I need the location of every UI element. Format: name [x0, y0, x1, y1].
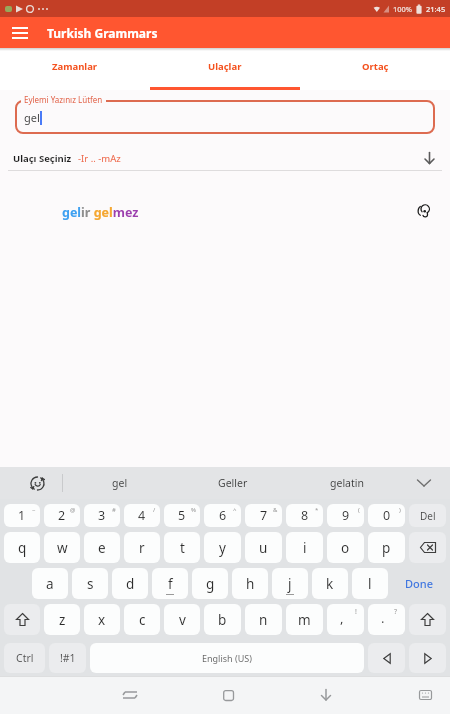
staticText: 1 — [18, 507, 26, 524]
button[interactable]: 5 — [164, 504, 200, 527]
staticText: ? — [394, 607, 398, 617]
staticText: , — [340, 609, 344, 627]
staticText: . — [381, 609, 385, 627]
button[interactable]: a — [32, 568, 68, 599]
staticText: f — [168, 575, 173, 593]
button[interactable]: n — [245, 604, 282, 635]
button[interactable]: m — [286, 604, 323, 635]
button[interactable]: . — [368, 604, 405, 635]
staticText: x — [98, 611, 106, 629]
staticText: gelir gelmez — [62, 204, 139, 221]
button[interactable]: English (US) — [90, 643, 364, 673]
button[interactable]: r — [124, 532, 160, 563]
button[interactable] — [20, 467, 54, 499]
staticText: English (US) — [202, 652, 252, 664]
button[interactable] — [4, 604, 40, 635]
staticText: r — [139, 539, 145, 557]
button[interactable]: 1 — [4, 504, 40, 527]
button[interactable]: u — [245, 532, 282, 563]
staticText: gel — [112, 476, 128, 490]
staticText: o — [341, 539, 350, 557]
button[interactable]: 7 — [245, 504, 282, 527]
button[interactable] — [407, 678, 443, 712]
button[interactable] — [308, 678, 344, 712]
button[interactable] — [409, 643, 446, 673]
button[interactable]: v — [164, 604, 200, 635]
button[interactable]: Done — [390, 568, 448, 599]
button[interactable] — [0, 17, 40, 48]
button[interactable]: b — [204, 604, 241, 635]
button[interactable]: s — [72, 568, 108, 599]
button[interactable]: 2 — [44, 504, 80, 527]
staticText: -Ir .. -mAz — [78, 152, 121, 165]
staticText: / — [153, 506, 156, 514]
button[interactable]: c — [124, 604, 160, 635]
button[interactable]: i — [286, 532, 323, 563]
button[interactable] — [112, 678, 148, 712]
button[interactable]: 0 — [368, 504, 405, 527]
staticText: # — [112, 506, 116, 514]
button[interactable]: gelatin — [312, 467, 382, 499]
button[interactable] — [210, 678, 246, 712]
staticText: n — [259, 611, 268, 629]
button[interactable]: w — [44, 532, 80, 563]
staticText: Ulaçı Seçiniz — [13, 152, 72, 165]
button[interactable]: Ulaçı Seçiniz — [13, 152, 442, 165]
staticText: m — [298, 611, 311, 629]
staticText: ^ — [233, 506, 237, 514]
button[interactable]: 3 — [84, 504, 120, 527]
button[interactable]: x — [84, 604, 120, 635]
staticText: Ulaçlar — [208, 60, 242, 73]
button[interactable] — [410, 469, 438, 497]
staticText: * — [315, 506, 319, 514]
button[interactable]: d — [112, 568, 148, 599]
button[interactable]: Geller — [198, 467, 268, 499]
button[interactable] — [368, 643, 405, 673]
button[interactable]: q — [4, 532, 40, 563]
staticText: ) — [399, 506, 401, 514]
button[interactable]: k — [312, 568, 348, 599]
button[interactable]: 6 — [204, 504, 241, 527]
button[interactable]: l — [352, 568, 388, 599]
button[interactable]: z — [44, 604, 80, 635]
staticText: q — [18, 539, 27, 557]
button[interactable]: j — [272, 568, 308, 599]
button[interactable]: gel — [15, 100, 435, 134]
staticText: Geller — [218, 476, 248, 490]
staticText: Ctrl — [16, 651, 34, 665]
button[interactable]: Ctrl — [4, 643, 45, 673]
staticText: 0 — [383, 507, 391, 524]
button[interactable]: f — [152, 568, 188, 599]
button[interactable]: 9 — [327, 504, 364, 527]
staticText: 100% — [393, 4, 413, 14]
button[interactable]: gel — [85, 467, 155, 499]
button[interactable]: t — [164, 532, 200, 563]
button[interactable]: 4 — [124, 504, 160, 527]
button[interactable]: !#1 — [49, 643, 86, 673]
staticText: k — [326, 575, 334, 593]
button[interactable]: Ulaçlar — [150, 48, 300, 90]
button[interactable]: g — [192, 568, 228, 599]
staticText: 5 — [178, 507, 186, 524]
staticText: c — [139, 611, 146, 629]
button[interactable]: Del — [409, 504, 446, 527]
staticText: !#1 — [60, 651, 76, 665]
button[interactable] — [409, 604, 446, 635]
button[interactable]: , — [327, 604, 364, 635]
staticText: 4 — [138, 507, 146, 524]
button[interactable]: 8 — [286, 504, 323, 527]
staticText: v — [179, 611, 186, 629]
button[interactable]: o — [327, 532, 364, 563]
staticText: 6 — [219, 507, 227, 524]
staticText: 7 — [260, 507, 268, 524]
button[interactable]: p — [368, 532, 405, 563]
staticText: 2 — [58, 507, 66, 524]
button[interactable] — [409, 532, 446, 563]
button[interactable]: Ortaç — [300, 48, 450, 90]
button[interactable]: e — [84, 532, 120, 563]
staticText: Ortaç — [362, 60, 389, 73]
button[interactable]: y — [204, 532, 241, 563]
button[interactable] — [417, 203, 435, 221]
button[interactable]: h — [232, 568, 268, 599]
button[interactable]: Zamanlar — [0, 48, 150, 90]
